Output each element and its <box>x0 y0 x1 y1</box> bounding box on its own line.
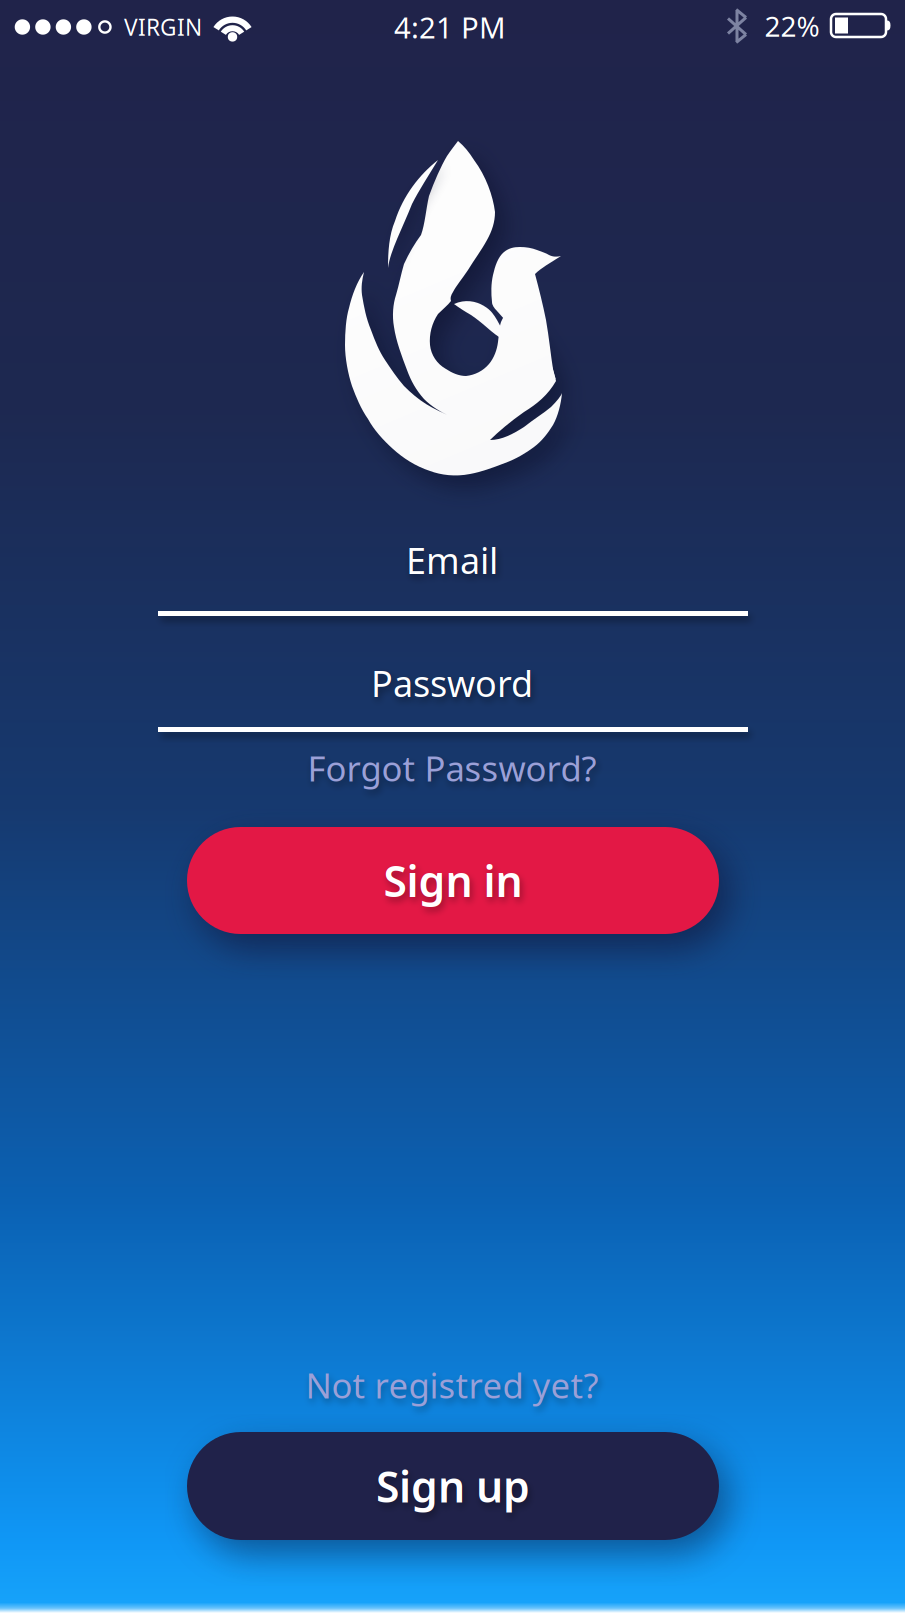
button[interactable]: Forgot Password? <box>307 745 596 791</box>
staticText: Email <box>406 536 498 584</box>
staticText: Forgot Password? <box>307 745 596 791</box>
button[interactable]: Email <box>158 538 748 616</box>
staticText: Password <box>371 659 533 707</box>
button[interactable]: Not registred yet? <box>305 1362 598 1408</box>
staticText: Not registred yet? <box>305 1362 598 1408</box>
staticText: 4:21 PM <box>394 7 506 46</box>
staticText: 22% <box>764 7 819 45</box>
staticText: VIRGIN <box>124 12 202 42</box>
staticText: Sign in <box>383 852 522 909</box>
button[interactable]: Password <box>158 661 748 731</box>
button[interactable]: Sign in <box>187 827 719 934</box>
staticText: Sign up <box>376 1458 530 1514</box>
button[interactable]: Sign up <box>187 1432 719 1540</box>
